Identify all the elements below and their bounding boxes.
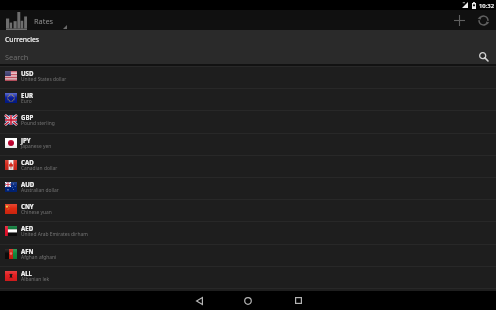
button[interactable]: JPY bbox=[0, 133, 496, 155]
button[interactable]: Currencies bbox=[0, 30, 496, 48]
staticText: Euro bbox=[21, 98, 32, 105]
button[interactable]: Search bbox=[477, 50, 491, 64]
staticText: GBP bbox=[21, 113, 34, 121]
staticText: Albanian lek bbox=[21, 276, 50, 283]
button[interactable]: Back bbox=[183, 291, 215, 310]
staticText: Pound sterling bbox=[21, 120, 55, 127]
button[interactable]: AFN bbox=[0, 244, 496, 266]
button[interactable]: Search bbox=[0, 48, 496, 66]
staticText: Australian dollar bbox=[21, 187, 59, 194]
staticText: ALL bbox=[21, 269, 33, 277]
staticText: Search bbox=[5, 52, 29, 62]
staticText: CAD bbox=[21, 158, 34, 166]
staticText: United States dollar bbox=[21, 76, 67, 83]
button[interactable]: Refresh bbox=[473, 10, 493, 30]
button[interactable]: Rates spinner bbox=[0, 10, 79, 30]
staticText: USD bbox=[21, 69, 34, 77]
staticText: United Arab Emirates dirham bbox=[21, 231, 88, 238]
button[interactable]: ALL bbox=[0, 266, 496, 288]
button[interactable]: USD bbox=[0, 66, 496, 88]
button[interactable]: Recents bbox=[282, 291, 314, 310]
staticText: 10:32 bbox=[479, 2, 495, 10]
staticText: Afghan afghani bbox=[21, 254, 57, 261]
button[interactable]: Add bbox=[449, 10, 469, 30]
staticText: AED bbox=[21, 224, 34, 232]
staticText: Canadian dollar bbox=[21, 165, 58, 172]
staticText: Rates bbox=[34, 16, 54, 26]
button[interactable]: AED bbox=[0, 221, 496, 243]
staticText: AFN bbox=[21, 247, 34, 255]
button[interactable]: CAD bbox=[0, 155, 496, 177]
staticText: EUR bbox=[21, 91, 34, 99]
staticText: Japanese yen bbox=[21, 143, 52, 150]
staticText: JPY bbox=[21, 136, 31, 144]
button[interactable]: GBP bbox=[0, 110, 496, 132]
staticText: Currencies bbox=[5, 35, 40, 44]
staticText: AUD bbox=[21, 180, 35, 188]
button[interactable]: Home bbox=[232, 291, 264, 310]
staticText: CNY bbox=[21, 202, 34, 210]
staticText: Chinese yuan bbox=[21, 209, 52, 216]
button[interactable]: EUR bbox=[0, 88, 496, 110]
button[interactable]: CNY bbox=[0, 199, 496, 221]
button[interactable]: AUD bbox=[0, 177, 496, 199]
